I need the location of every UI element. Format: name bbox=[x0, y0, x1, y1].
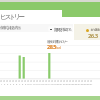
staticText: 月 bbox=[45, 80, 48, 83]
staticText: 月 bbox=[21, 80, 24, 83]
staticText: 月 bbox=[30, 80, 33, 83]
staticText: 月 bbox=[66, 80, 69, 83]
staticText: 12 bbox=[33, 83, 36, 86]
staticText: 28 bbox=[81, 83, 84, 86]
staticText: ヒストリー bbox=[0, 13, 24, 21]
staticText: 月 bbox=[15, 80, 18, 83]
staticText: まだ余裕があります bbox=[90, 28, 100, 33]
staticText: 月 bbox=[33, 80, 36, 83]
staticText: 3 bbox=[7, 83, 9, 86]
staticText: 月 bbox=[0, 80, 3, 83]
staticText: 16 bbox=[45, 83, 48, 86]
staticText: 月 bbox=[12, 80, 15, 83]
staticText: 24 bbox=[69, 83, 72, 86]
staticText: 月 bbox=[72, 80, 75, 83]
staticText: 6 bbox=[16, 83, 18, 86]
staticText: 21 bbox=[60, 83, 63, 86]
staticText: 28.5 bbox=[47, 43, 56, 50]
staticText: 月 bbox=[36, 80, 39, 83]
staticText: 月 bbox=[27, 80, 30, 83]
staticText: 1 bbox=[1, 83, 3, 86]
staticText: 食事の記録を表示 bbox=[0, 25, 20, 30]
staticText: 23 bbox=[66, 83, 69, 86]
staticText: 13 bbox=[36, 83, 39, 86]
staticText: 月 bbox=[75, 80, 78, 83]
staticText: 19 bbox=[54, 83, 57, 86]
staticText: 2 bbox=[4, 83, 6, 86]
staticText: 20 bbox=[57, 83, 60, 86]
staticText: 7 bbox=[19, 83, 21, 86]
staticText: 月 bbox=[42, 80, 45, 83]
staticText: 9 bbox=[25, 83, 27, 86]
staticText: 月 bbox=[69, 80, 72, 83]
staticText: 27 bbox=[78, 83, 81, 86]
staticText: 月 bbox=[9, 80, 12, 83]
staticText: 18 bbox=[51, 83, 54, 86]
staticText: 15 bbox=[42, 83, 45, 86]
staticText: 月 bbox=[51, 80, 54, 83]
button[interactable]: 期間を指定する bbox=[48, 26, 73, 32]
staticText: 26 bbox=[75, 83, 78, 86]
staticText: 月 bbox=[39, 80, 42, 83]
staticText: 月 bbox=[84, 80, 87, 83]
staticText: 最大日の摂取カロリー bbox=[47, 40, 67, 45]
staticText: 5 bbox=[13, 83, 15, 86]
staticText: 8 bbox=[22, 83, 24, 86]
staticText: 月 bbox=[90, 80, 93, 83]
staticText: kcal bbox=[56, 45, 61, 50]
staticText: 25 bbox=[72, 83, 75, 86]
staticText: 29 bbox=[84, 83, 87, 86]
staticText: 14 bbox=[39, 83, 42, 86]
button[interactable]: まだ余裕があります bbox=[74, 24, 100, 40]
staticText: 17 bbox=[48, 83, 51, 86]
staticText: 22 bbox=[63, 83, 66, 86]
staticText: 月 bbox=[18, 80, 21, 83]
staticText: 月 bbox=[48, 80, 51, 83]
staticText: 月 bbox=[6, 80, 9, 83]
staticText: 月 bbox=[24, 80, 27, 83]
staticText: 31 bbox=[90, 83, 93, 86]
staticText: 30 bbox=[87, 83, 90, 86]
staticText: 月 bbox=[57, 80, 60, 83]
staticText: 11 bbox=[30, 83, 33, 86]
staticText: 4 bbox=[10, 83, 12, 86]
staticText: 期間を指定する bbox=[54, 27, 71, 32]
staticText: 月 bbox=[81, 80, 84, 83]
staticText: 月 bbox=[87, 80, 90, 83]
staticText: 月 bbox=[78, 80, 81, 83]
staticText: 月 bbox=[54, 80, 57, 83]
staticText: 月 bbox=[63, 80, 66, 83]
staticText: 10 bbox=[27, 83, 30, 86]
staticText: 月 bbox=[3, 80, 6, 83]
staticText: 月 bbox=[60, 80, 63, 83]
staticText: 26.3 bbox=[88, 32, 98, 40]
